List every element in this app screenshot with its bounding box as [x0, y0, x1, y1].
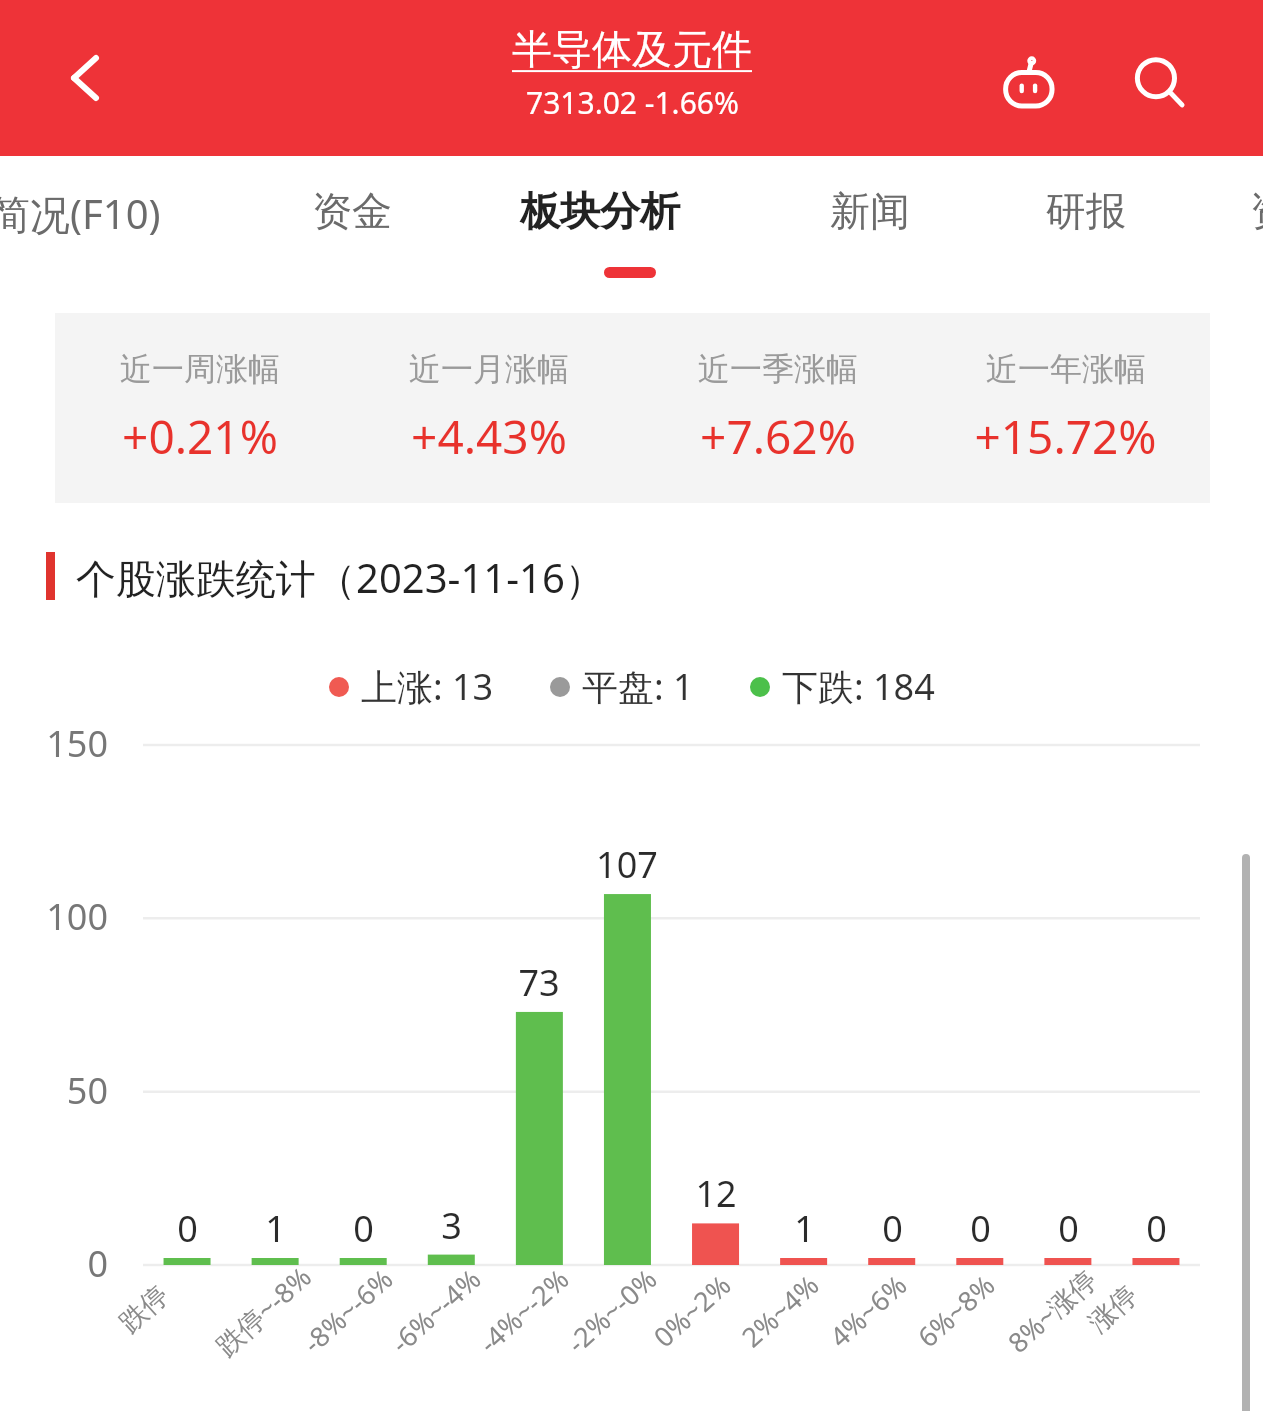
button[interactable]: 研报	[1046, 186, 1126, 236]
staticText: 半导体及元件	[512, 24, 752, 74]
staticText: 2%~4%	[733, 1266, 826, 1355]
staticText: 跌停~-8%	[208, 1258, 319, 1363]
staticText: -4%~-2%	[471, 1260, 576, 1361]
staticText: +0.21%	[122, 405, 278, 468]
button[interactable]: 近一季涨幅	[633, 313, 922, 503]
button[interactable]: 简况(F10)	[0, 186, 161, 241]
staticText: 简况(F10)	[0, 186, 161, 241]
staticText: 150	[46, 719, 108, 768]
staticText: 7313.02 -1.66%	[526, 82, 739, 123]
button[interactable]: 近一年涨幅	[921, 313, 1210, 503]
staticText: 资	[1250, 186, 1263, 236]
staticText: 3	[441, 1201, 462, 1250]
staticText: 近一年涨幅	[986, 349, 1146, 389]
button[interactable]: 近一周涨幅	[55, 313, 344, 503]
staticText: +15.72%	[974, 405, 1157, 468]
staticText: 4%~6%	[821, 1266, 914, 1355]
button[interactable]: 平盘: 1	[550, 662, 694, 711]
button[interactable]: 近一月涨幅	[344, 313, 633, 503]
button[interactable]: 下跌: 184	[750, 662, 935, 711]
staticText: 个股涨跌统计（2023-11-16）	[76, 550, 605, 605]
staticText: 8%~涨停	[999, 1261, 1104, 1360]
staticText: 6%~8%	[909, 1266, 1002, 1355]
staticText: 0	[1146, 1204, 1167, 1253]
staticText: 0	[87, 1239, 108, 1288]
staticText: 涨停	[1082, 1278, 1144, 1340]
button[interactable]: 资金	[312, 186, 392, 236]
staticText: 0	[353, 1204, 374, 1253]
staticText: 近一月涨幅	[409, 349, 569, 389]
button[interactable]: 资	[1250, 186, 1263, 236]
button[interactable]: 新闻	[830, 186, 910, 236]
staticText: -6%~-4%	[383, 1260, 488, 1361]
staticText: 板块分析	[520, 186, 680, 236]
staticText: 新闻	[830, 186, 910, 236]
button[interactable]: Search	[1118, 42, 1202, 126]
staticText: -8%~-6%	[295, 1260, 400, 1361]
staticText: 107	[596, 840, 658, 889]
staticText: 近一季涨幅	[698, 349, 858, 389]
staticText: 平盘: 1	[582, 662, 694, 711]
staticText: 0	[970, 1204, 991, 1253]
staticText: 12	[695, 1169, 737, 1218]
staticText: 0	[177, 1204, 198, 1253]
staticText: 0%~2%	[645, 1266, 738, 1355]
staticText: 下跌: 184	[782, 662, 935, 711]
staticText: 1	[794, 1204, 815, 1253]
button[interactable]: 板块分析	[520, 186, 680, 236]
button[interactable]: AI assistant	[988, 42, 1072, 126]
staticText: 0	[882, 1204, 903, 1253]
staticText: 0	[1058, 1204, 1079, 1253]
button[interactable]: Back	[48, 40, 124, 116]
button[interactable]: 上涨: 13	[329, 662, 494, 711]
staticText: 近一周涨幅	[120, 349, 280, 389]
staticText: 1	[265, 1204, 286, 1253]
staticText: +7.62%	[700, 405, 856, 468]
staticText: +4.43%	[411, 405, 567, 468]
staticText: 100	[46, 892, 108, 941]
staticText: 50	[66, 1066, 108, 1115]
staticText: 73	[518, 958, 560, 1007]
staticText: 上涨: 13	[361, 662, 494, 711]
staticText: 跌停	[113, 1278, 175, 1340]
staticText: 研报	[1046, 186, 1126, 236]
staticText: -2%~-0%	[559, 1260, 664, 1361]
staticText: 资金	[312, 186, 392, 236]
